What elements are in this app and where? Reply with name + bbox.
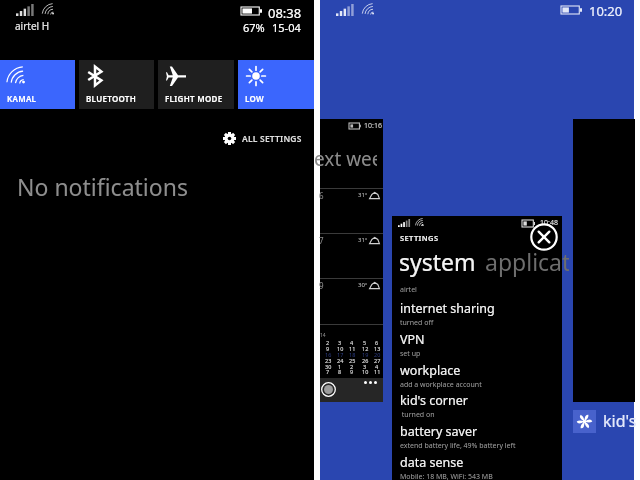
staticText: 14 (320, 332, 326, 339)
staticText: turned off (400, 318, 434, 328)
staticText: kid's corner (400, 392, 468, 409)
staticText: VPN (400, 331, 425, 348)
staticText: 10:20 (589, 2, 623, 20)
button[interactable]: internet sharing (398, 300, 562, 328)
staticText: 08:38 (268, 4, 302, 22)
staticText: airtel H (15, 19, 50, 33)
button[interactable]: data sense (398, 454, 562, 480)
staticText: 18 (349, 351, 356, 357)
staticText: applicat (485, 246, 569, 277)
staticText: 2 (350, 363, 354, 369)
button[interactable]: kid's c (573, 408, 640, 434)
staticText: 31° (358, 236, 368, 244)
button[interactable]: battery saver (398, 423, 562, 451)
staticText: 10 (337, 345, 344, 351)
staticText: SETTINGS (400, 233, 439, 243)
staticText: 7 (319, 235, 324, 246)
staticText: KAMAL (7, 93, 37, 104)
staticText: 5 (363, 339, 367, 345)
staticText: 26 (362, 357, 369, 363)
staticText: 10:16 (364, 121, 382, 131)
staticText: 11 (349, 345, 356, 351)
staticText: No notifications (17, 171, 188, 202)
staticText: battery saver (400, 423, 478, 440)
staticText: 9 (350, 368, 354, 374)
button[interactable]: kid's corner (398, 392, 562, 420)
staticText: 20 (374, 351, 381, 357)
staticText: 10:48 (540, 218, 558, 228)
staticText: 2 (326, 339, 330, 345)
staticText: 25 (349, 357, 356, 363)
staticText: 11 (374, 368, 381, 374)
staticText: ALL SETTINGS (242, 133, 302, 145)
button[interactable]: VPN (398, 331, 562, 359)
button[interactable]: BLUETOOTH (79, 60, 154, 109)
staticText: 6 (375, 339, 379, 345)
staticText: 27 (374, 357, 381, 363)
staticText: kid's c (603, 410, 640, 432)
staticText: 1 (338, 363, 342, 369)
staticText: 12 (362, 345, 369, 351)
staticText: 23 (325, 357, 332, 363)
staticText: 67% (243, 20, 265, 35)
staticText: 4 (350, 339, 354, 345)
staticText: 8 (338, 368, 342, 374)
staticText: 24 (337, 357, 344, 363)
staticText: airtel (400, 285, 417, 295)
staticText: internet sharing (400, 300, 495, 317)
staticText: BLUETOOTH (86, 93, 137, 104)
staticText: add a workplace account (400, 380, 482, 390)
staticText: workplace (400, 362, 461, 379)
staticText: turned on (400, 410, 435, 420)
staticText: 31° (358, 191, 368, 199)
staticText: 30 (325, 363, 332, 369)
staticText: 17 (337, 351, 344, 357)
staticText: 19 (362, 351, 369, 357)
button[interactable]: Close (530, 223, 558, 251)
button[interactable]: workplace (398, 362, 562, 390)
button[interactable] (320, 378, 383, 402)
button[interactable]: ALL SETTINGS (219, 128, 306, 149)
staticText: data sense (400, 454, 464, 471)
staticText: 13 (374, 345, 381, 351)
staticText: 6 (319, 190, 324, 201)
staticText: 4 (375, 363, 379, 369)
staticText: 9 (319, 280, 324, 291)
staticText: 7 (326, 368, 330, 374)
staticText: extend battery life, 49% battery left (400, 441, 516, 451)
staticText: 10 (362, 368, 369, 374)
staticText: 3 (338, 339, 342, 345)
staticText: set up (400, 349, 421, 359)
button[interactable]: KAMAL (0, 60, 75, 109)
staticText: system (399, 246, 476, 277)
button[interactable]: LOW (238, 60, 314, 109)
staticText: 15-04 (272, 20, 301, 35)
staticText: 30° (358, 281, 368, 289)
staticText: 3 (363, 363, 367, 369)
button[interactable]: FLIGHT MODE (158, 60, 234, 109)
staticText: 16 (325, 351, 332, 357)
staticText: LOW (245, 93, 264, 104)
staticText: FLIGHT MODE (165, 93, 223, 104)
staticText: ext wee (314, 146, 377, 172)
staticText: Mobile: 18 MB, WiFi: 543 MB (400, 472, 493, 480)
staticText: 9 (326, 345, 330, 351)
